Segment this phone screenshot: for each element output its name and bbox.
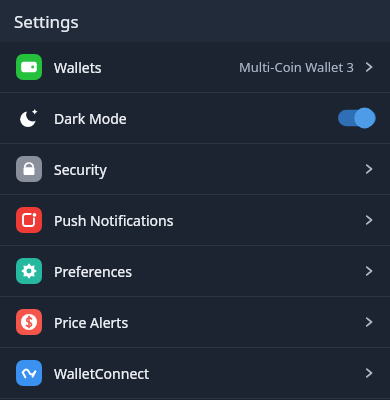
staticText: Dark Mode	[54, 109, 127, 128]
button[interactable]: Security	[0, 144, 390, 194]
button[interactable]: Dark Mode	[0, 93, 390, 143]
staticText: Price Alerts	[54, 313, 129, 332]
button[interactable]: WalletConnect	[0, 348, 390, 398]
staticText: Settings	[14, 10, 79, 33]
staticText: Preferences	[54, 262, 132, 281]
staticText: Security	[54, 160, 107, 179]
button[interactable]: Wallets	[0, 42, 390, 92]
button[interactable]: Push Notifications	[0, 195, 390, 245]
button[interactable]: Price Alerts	[0, 297, 390, 347]
button[interactable]: Preferences	[0, 246, 390, 296]
staticText: Wallets	[54, 58, 102, 77]
button[interactable]: Dark Mode toggle	[338, 108, 376, 128]
staticText: Push Notifications	[54, 211, 174, 230]
staticText: Multi-Coin Wallet 3	[239, 58, 354, 76]
staticText: WalletConnect	[54, 364, 150, 383]
